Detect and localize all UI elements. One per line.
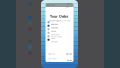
button[interactable]: Promo code	[47, 34, 71, 38]
button[interactable]: Sidebar item	[27, 39, 33, 43]
staticText: Your Order	[50, 14, 69, 19]
button[interactable]: Sidebar item	[27, 21, 33, 25]
staticText: $3.50	[66, 58, 71, 62]
staticText: Delivery address	[50, 19, 59, 25]
button[interactable]: Sidebar item	[27, 15, 33, 19]
staticText: Subtotal	[47, 52, 55, 55]
staticText: Order summary	[50, 29, 59, 36]
staticText: $42.00	[65, 52, 71, 55]
staticText: Payment method	[50, 22, 58, 29]
staticText: Total charged	[50, 36, 57, 43]
staticText: Promo code	[50, 35, 61, 38]
staticText: Sign in	[66, 1, 72, 9]
staticText: Menu	[47, 3, 55, 7]
button[interactable]: Sidebar item	[27, 2, 33, 6]
button[interactable]: Delivery address	[47, 20, 71, 24]
button[interactable]: Sidebar item	[27, 45, 33, 49]
button[interactable]: Total charged	[47, 38, 71, 41]
button[interactable]: Order summary	[47, 31, 71, 34]
staticText: Contact info	[50, 26, 58, 32]
staticText: Review before you pay	[48, 19, 70, 22]
button[interactable]: Contact info	[47, 27, 71, 31]
button[interactable]: Sidebar item	[27, 51, 33, 55]
button[interactable]: Payment method	[47, 24, 71, 27]
button[interactable]: Sidebar item	[27, 27, 33, 31]
staticText: Delivery fee	[47, 57, 56, 63]
button[interactable]: Sidebar item	[27, 33, 33, 37]
